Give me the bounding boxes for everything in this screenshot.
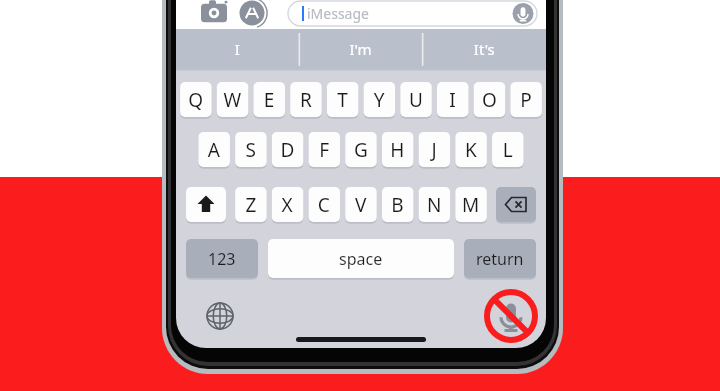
button[interactable]: iPhone keyboard with microphone disabled <box>0 0 720 391</box>
